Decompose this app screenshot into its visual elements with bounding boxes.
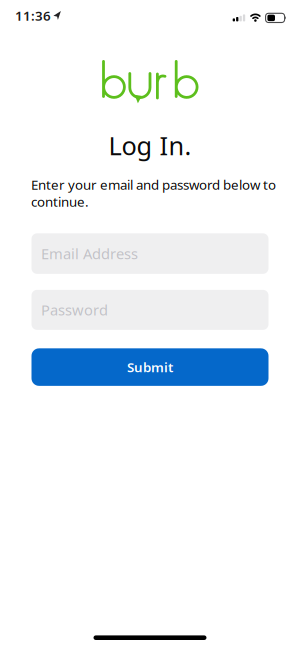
- staticText: Password: [41, 300, 108, 320]
- staticText: 11:36: [15, 7, 51, 24]
- button[interactable]: Email Address: [31, 233, 268, 274]
- staticText: Email Address: [41, 244, 138, 263]
- button[interactable]: Password: [31, 290, 268, 330]
- button[interactable]: Submit: [31, 348, 268, 386]
- staticText: Enter your email and password below to c…: [31, 176, 276, 210]
- staticText: Log In.: [108, 128, 191, 162]
- staticText: Submit: [127, 358, 173, 376]
